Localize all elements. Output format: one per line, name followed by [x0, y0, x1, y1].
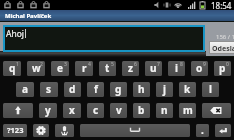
staticText: 8 [180, 61, 183, 68]
staticText: r [82, 61, 87, 75]
staticText: 1 [16, 61, 19, 68]
button[interactable]: Settings [33, 124, 49, 137]
staticText: i [175, 61, 178, 75]
button[interactable]: g [110, 82, 127, 97]
staticText: q [9, 61, 16, 75]
staticText: s [46, 82, 52, 96]
button[interactable]: q [3, 61, 21, 76]
button[interactable]: s [40, 82, 58, 97]
button[interactable]: l [202, 82, 219, 97]
button[interactable]: i [168, 61, 185, 76]
button[interactable]: c [87, 103, 104, 118]
staticText: m [183, 103, 193, 117]
staticText: . [201, 124, 204, 136]
button[interactable]: v [110, 103, 127, 118]
button[interactable]: b [133, 103, 150, 118]
button[interactable]: h [133, 82, 150, 97]
staticText: Ahoj [6, 28, 25, 40]
button[interactable]: k [179, 82, 196, 97]
staticText: l [209, 82, 212, 96]
button[interactable]: u [145, 61, 162, 76]
button[interactable]: a [16, 82, 34, 97]
button[interactable]: e [51, 61, 69, 76]
button[interactable]: Shift [3, 103, 33, 118]
staticText: c [93, 103, 99, 117]
staticText: 2 [40, 61, 43, 68]
staticText: o [196, 61, 203, 75]
staticText: 5 [111, 61, 114, 68]
staticText: 0 [226, 61, 229, 68]
button[interactable]: Odeslat [210, 42, 234, 53]
staticText: n [161, 103, 168, 117]
staticText: 9 [203, 61, 206, 68]
button[interactable]: Space [80, 124, 190, 137]
staticText: x [69, 103, 75, 117]
staticText: 6 [134, 61, 137, 68]
button[interactable]: t [99, 61, 116, 76]
button[interactable]: w [27, 61, 45, 76]
staticText: f [94, 82, 98, 96]
staticText: Michal Pavlíček [5, 12, 52, 20]
button[interactable]: Enter [215, 124, 231, 137]
button[interactable]: d [64, 82, 81, 97]
staticText: y [45, 103, 51, 117]
button[interactable]: Michal Pavlíček [0, 10, 234, 21]
button[interactable]: o [191, 61, 208, 76]
button[interactable]: Backspace [202, 103, 231, 118]
staticText: 4 [88, 61, 91, 68]
staticText: k [184, 82, 191, 96]
button[interactable]: . [196, 124, 209, 137]
staticText: 3 [64, 61, 67, 68]
staticText: b [138, 103, 145, 117]
button[interactable]: x [63, 103, 81, 118]
button[interactable]: Voice input [55, 124, 74, 137]
staticText: 18:54 [211, 0, 232, 10]
staticText: h [138, 82, 145, 96]
staticText: d [69, 82, 76, 96]
button[interactable]: n [156, 103, 173, 118]
staticText: z [128, 61, 133, 75]
staticText: e [57, 61, 63, 75]
button[interactable]: y [39, 103, 57, 118]
staticText: Odeslat [212, 44, 234, 54]
button[interactable]: ?123 [3, 124, 27, 137]
button[interactable]: f [87, 82, 104, 97]
staticText: 7 [157, 61, 160, 68]
button[interactable]: Ahoj [5, 27, 203, 50]
staticText: g [115, 82, 122, 96]
staticText: j [163, 82, 166, 96]
staticText: u [150, 61, 157, 75]
staticText: ?123 [7, 125, 24, 135]
staticText: t [105, 61, 110, 75]
staticText: a [22, 82, 28, 96]
staticText: p [219, 61, 226, 75]
button[interactable]: z [122, 61, 139, 76]
button[interactable]: j [156, 82, 173, 97]
staticText: w [32, 61, 41, 75]
button[interactable]: p [214, 61, 231, 76]
staticText: 156 / 1 [216, 33, 234, 41]
button[interactable]: r [75, 61, 93, 76]
staticText: v [116, 103, 122, 117]
button[interactable]: m [179, 103, 196, 118]
